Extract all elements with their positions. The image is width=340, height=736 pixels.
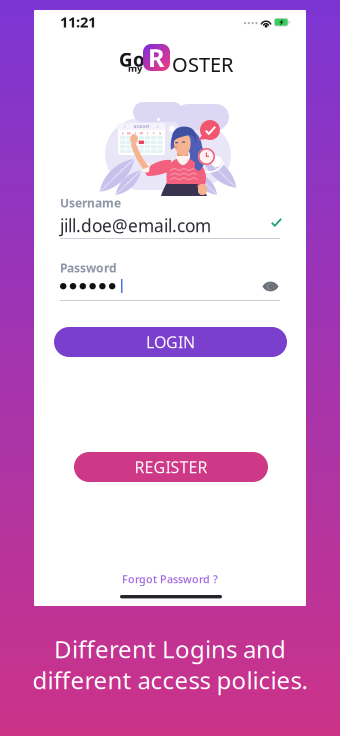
- staticText: S: [122, 130, 124, 136]
- staticText: W: [139, 130, 143, 136]
- staticText: OSTER: [172, 51, 233, 78]
- button[interactable]: REGISTER: [74, 452, 268, 482]
- staticText: S: [159, 130, 161, 136]
- staticText: different access policies.: [32, 664, 307, 696]
- staticText: Username: [60, 195, 121, 211]
- staticText: AUGUST: [133, 124, 149, 129]
- staticText: LOGIN: [146, 331, 195, 353]
- staticText: R: [148, 41, 165, 74]
- staticText: my: [128, 62, 142, 74]
- staticText: Forgot Password ?: [122, 572, 218, 586]
- staticText: T: [134, 130, 136, 136]
- staticText: F: [153, 130, 155, 136]
- button[interactable]: Forgot Password ?: [114, 572, 226, 586]
- staticText: ‹: [124, 123, 126, 130]
- staticText: ›: [157, 123, 159, 130]
- staticText: jill.doe@email.com: [60, 214, 211, 237]
- staticText: Got: [119, 47, 153, 72]
- staticText: Password: [60, 260, 117, 276]
- staticText: Different Logins and: [54, 633, 286, 665]
- staticText: T: [147, 130, 149, 136]
- staticText: 11:21: [60, 12, 96, 31]
- staticText: REGISTER: [134, 456, 207, 478]
- button[interactable]: LOGIN: [54, 327, 287, 357]
- staticText: M: [127, 130, 131, 136]
